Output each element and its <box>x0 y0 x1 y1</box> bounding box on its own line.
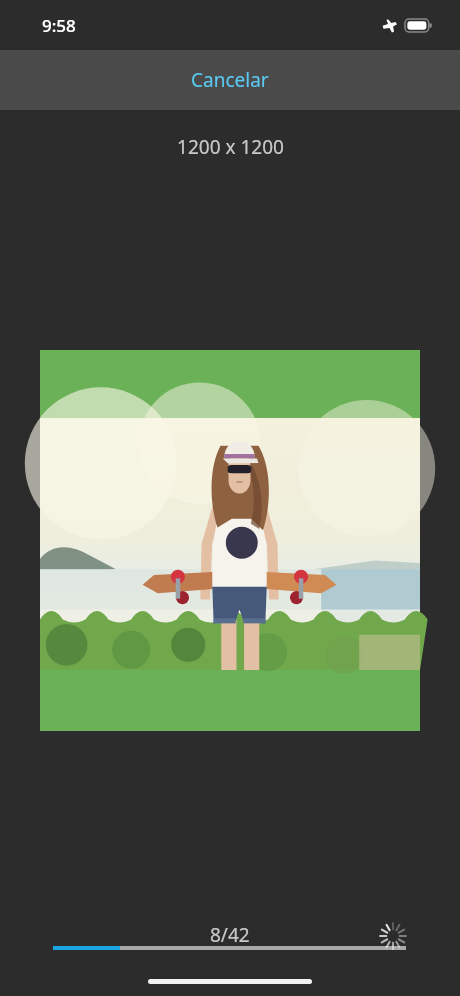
button[interactable] <box>40 350 420 731</box>
staticText: Cancelar <box>191 67 269 93</box>
staticText: 1200 x 1200 <box>177 134 284 160</box>
button[interactable]: Cancelar <box>175 59 285 101</box>
staticText: 8/42 <box>210 922 250 948</box>
other: Loading <box>379 922 407 950</box>
other: Upload progress <box>53 946 406 950</box>
staticText: 9:58 <box>42 14 76 37</box>
